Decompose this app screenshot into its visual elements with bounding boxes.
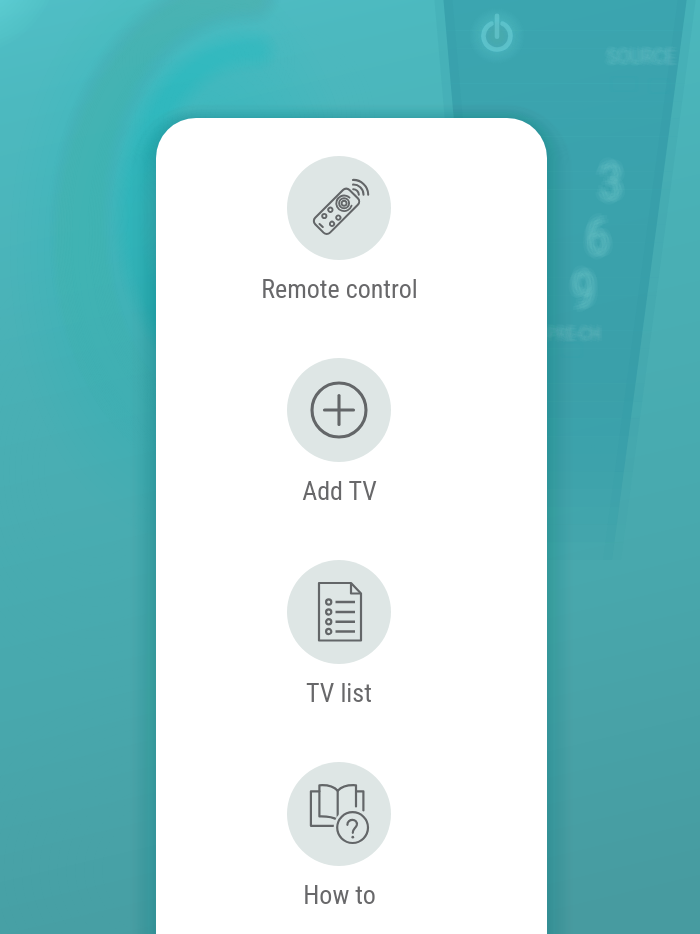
other: Add TV (309, 380, 369, 440)
staticText: How to (303, 880, 376, 910)
staticText: Remote control (261, 274, 418, 304)
staticText: TV list (306, 678, 372, 708)
button[interactable]: How to (244, 758, 434, 918)
staticText: Add TV (302, 476, 377, 506)
button[interactable]: Add TV (244, 354, 434, 514)
other: Remote control (309, 178, 369, 238)
button[interactable]: Remote control (244, 152, 434, 312)
button[interactable]: TV list (244, 556, 434, 716)
other: TV list (309, 582, 369, 642)
other: How to (309, 784, 369, 844)
